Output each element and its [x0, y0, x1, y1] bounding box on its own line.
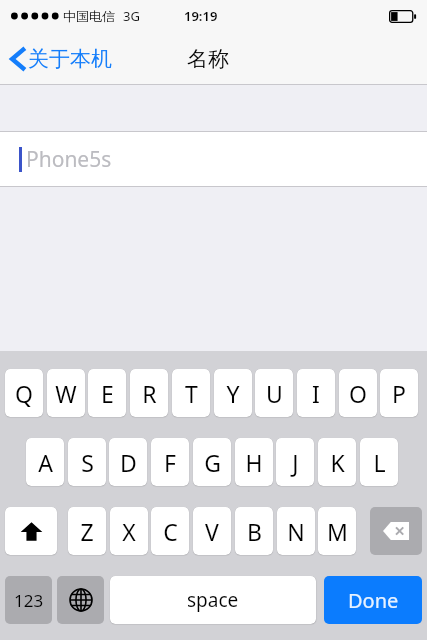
staticText: T — [185, 378, 198, 409]
button[interactable]: X — [110, 507, 148, 555]
staticText: 中国电信 — [63, 8, 115, 24]
button[interactable]: E — [88, 369, 126, 417]
button[interactable]: Shift — [5, 507, 57, 555]
button[interactable]: B — [235, 507, 273, 555]
button[interactable]: H — [235, 438, 273, 486]
button[interactable]: Done — [324, 576, 422, 624]
button[interactable]: 关于本机 — [0, 40, 122, 78]
button[interactable]: Phone5s — [0, 131, 427, 187]
button[interactable]: L — [360, 438, 398, 486]
button[interactable]: T — [172, 369, 210, 417]
staticText: D — [120, 447, 137, 478]
button[interactable]: O — [339, 369, 377, 417]
button[interactable]: Q — [5, 369, 43, 417]
staticText: E — [101, 378, 114, 409]
button[interactable]: J — [276, 438, 314, 486]
staticText: I — [312, 378, 320, 409]
button[interactable]: space — [110, 576, 316, 624]
staticText: A — [38, 447, 53, 478]
staticText: 关于本机 — [28, 46, 112, 72]
staticText: X — [122, 516, 136, 547]
staticText: Done — [348, 587, 399, 614]
button[interactable]: G — [193, 438, 231, 486]
staticText: W — [55, 378, 77, 409]
staticText: K — [330, 447, 345, 478]
staticText: Q — [15, 378, 33, 409]
staticText: V — [205, 516, 219, 547]
button[interactable]: P — [380, 369, 418, 417]
staticText: 19:19 — [184, 7, 218, 25]
button[interactable]: Y — [214, 369, 252, 417]
button[interactable]: Change keyboard language — [57, 576, 104, 624]
button[interactable]: U — [255, 369, 293, 417]
staticText: N — [287, 516, 305, 547]
button[interactable]: M — [318, 507, 356, 555]
staticText: Y — [226, 378, 240, 409]
button[interactable]: F — [151, 438, 189, 486]
staticText: R — [142, 378, 157, 409]
button[interactable]: K — [318, 438, 356, 486]
button[interactable]: V — [193, 507, 231, 555]
staticText: Phone5s — [26, 145, 112, 174]
button[interactable]: 123 — [5, 576, 52, 624]
staticText: space — [187, 587, 239, 613]
button[interactable]: I — [297, 369, 335, 417]
button[interactable]: C — [151, 507, 189, 555]
button[interactable]: Z — [68, 507, 106, 555]
staticText: B — [247, 516, 262, 547]
staticText: C — [163, 516, 178, 547]
staticText: H — [245, 447, 263, 478]
button[interactable]: W — [47, 369, 85, 417]
staticText: P — [392, 378, 406, 409]
button[interactable]: R — [130, 369, 168, 417]
staticText: S — [81, 447, 94, 478]
staticText: 3G — [123, 7, 140, 25]
staticText: Z — [80, 516, 94, 547]
button[interactable]: N — [277, 507, 315, 555]
staticText: J — [292, 447, 299, 478]
staticText: G — [204, 447, 221, 478]
staticText: 名称 — [187, 46, 229, 72]
staticText: 123 — [14, 589, 44, 612]
staticText: M — [327, 516, 348, 547]
staticText: O — [349, 378, 367, 409]
button[interactable]: A — [26, 438, 64, 486]
staticText: U — [266, 378, 283, 409]
button[interactable]: S — [68, 438, 106, 486]
staticText: L — [373, 447, 386, 478]
staticText: F — [164, 447, 176, 478]
button[interactable]: Backspace — [370, 507, 422, 555]
button[interactable]: D — [109, 438, 147, 486]
